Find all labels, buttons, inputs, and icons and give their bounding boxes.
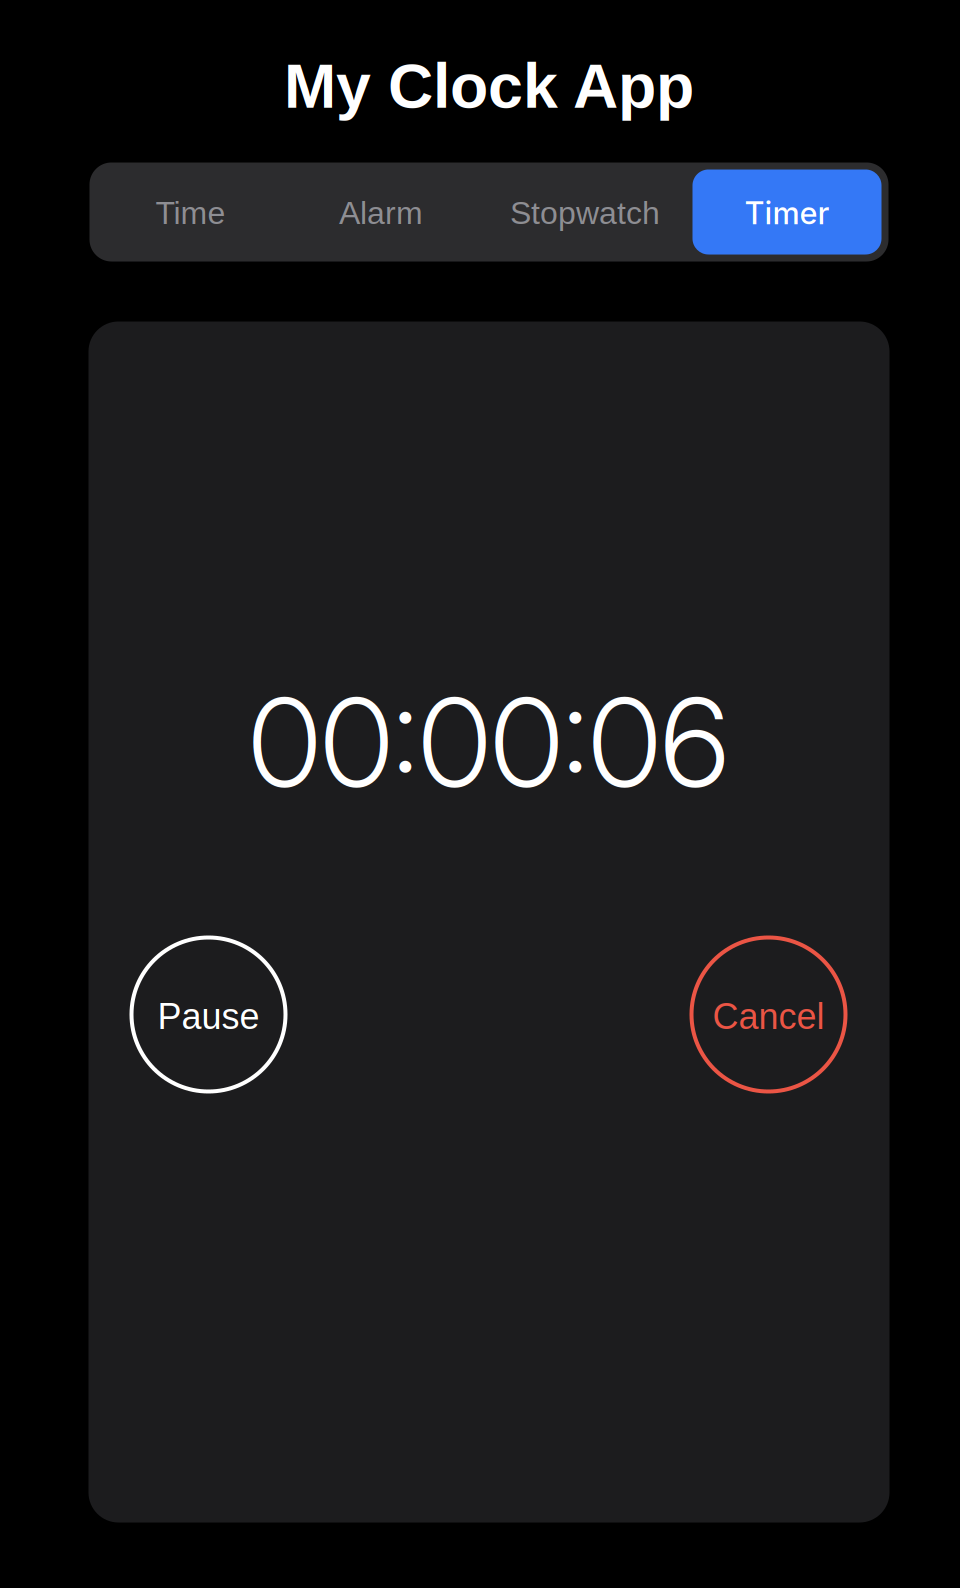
staticText: Time [155,195,225,231]
staticText: My Clock App [284,51,694,121]
staticText: Alarm [339,195,423,231]
button[interactable]: Timer [692,169,881,254]
staticText: 00:00:06 [248,669,728,816]
button[interactable]: Time [96,169,284,254]
button[interactable]: Pause [131,937,285,1091]
staticText: Timer [744,194,829,231]
button[interactable]: Cancel [691,937,845,1091]
staticText: Stopwatch [510,195,660,231]
button[interactable]: Stopwatch [477,169,692,254]
staticText: Pause [157,996,259,1037]
staticText: Cancel [712,996,824,1037]
button[interactable]: Alarm [284,169,477,254]
